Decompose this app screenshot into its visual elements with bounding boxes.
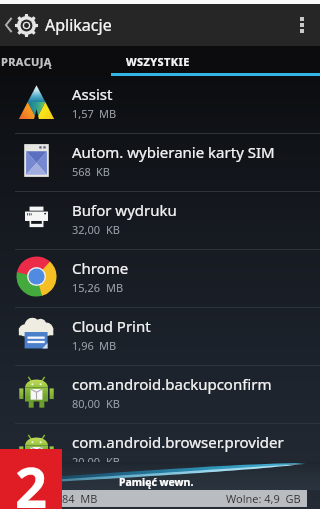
staticText: 32,00 (72, 222, 101, 237)
staticText: KB (96, 164, 110, 179)
staticText: Pamięć wewn. (119, 475, 194, 489)
staticText: Aplikacje (45, 14, 112, 36)
staticText: 80,00 (72, 396, 101, 411)
button[interactable]: More options (284, 4, 320, 46)
button[interactable]: Autom. wybieranie karty SIM (0, 134, 320, 192)
staticText: KB (106, 396, 120, 411)
staticText: Assist (72, 84, 113, 104)
button[interactable]: com.android.backupconfirm (0, 366, 320, 424)
staticText: 2 (15, 448, 48, 508)
staticText: MB (106, 280, 124, 295)
button[interactable]: Aplikacje (0, 4, 284, 46)
staticText: PRACUJĄ (1, 54, 52, 69)
staticText: KB (106, 454, 120, 469)
button[interactable]: Chrome (0, 250, 320, 308)
staticText: 568 (72, 164, 91, 179)
staticText: Wolne: 4,9 GB (226, 491, 301, 506)
staticText: WSZYSTKIE (126, 54, 190, 69)
button[interactable]: 84 MB (0, 490, 307, 507)
staticText: KB (106, 222, 120, 237)
staticText: 1,96 (72, 338, 94, 353)
staticText: Cloud Print (72, 316, 151, 336)
button[interactable]: Assist (0, 76, 320, 134)
button[interactable]: Pamięć wewn. (0, 462, 320, 490)
staticText: com.android.browser.provider (72, 432, 284, 452)
staticText: 84 MB (62, 491, 98, 506)
staticText: com.android.backupconfirm (72, 374, 272, 394)
button[interactable]: com.android.browser.provider (0, 424, 320, 482)
staticText: 20,00 (72, 454, 101, 469)
button[interactable]: PRACUJĄ (0, 46, 111, 76)
button[interactable]: WSZYSTKIE (111, 46, 320, 76)
button[interactable]: Cloud Print (0, 308, 320, 366)
staticText: 1,57 (72, 106, 94, 121)
staticText: MB (99, 106, 117, 121)
button[interactable]: Bufor wydruku (0, 192, 320, 250)
staticText: Autom. wybieranie karty SIM (72, 142, 275, 162)
staticText: Bufor wydruku (72, 200, 177, 220)
staticText: 15,26 (72, 280, 101, 295)
staticText: MB (99, 338, 117, 353)
staticText: Chrome (72, 258, 129, 278)
